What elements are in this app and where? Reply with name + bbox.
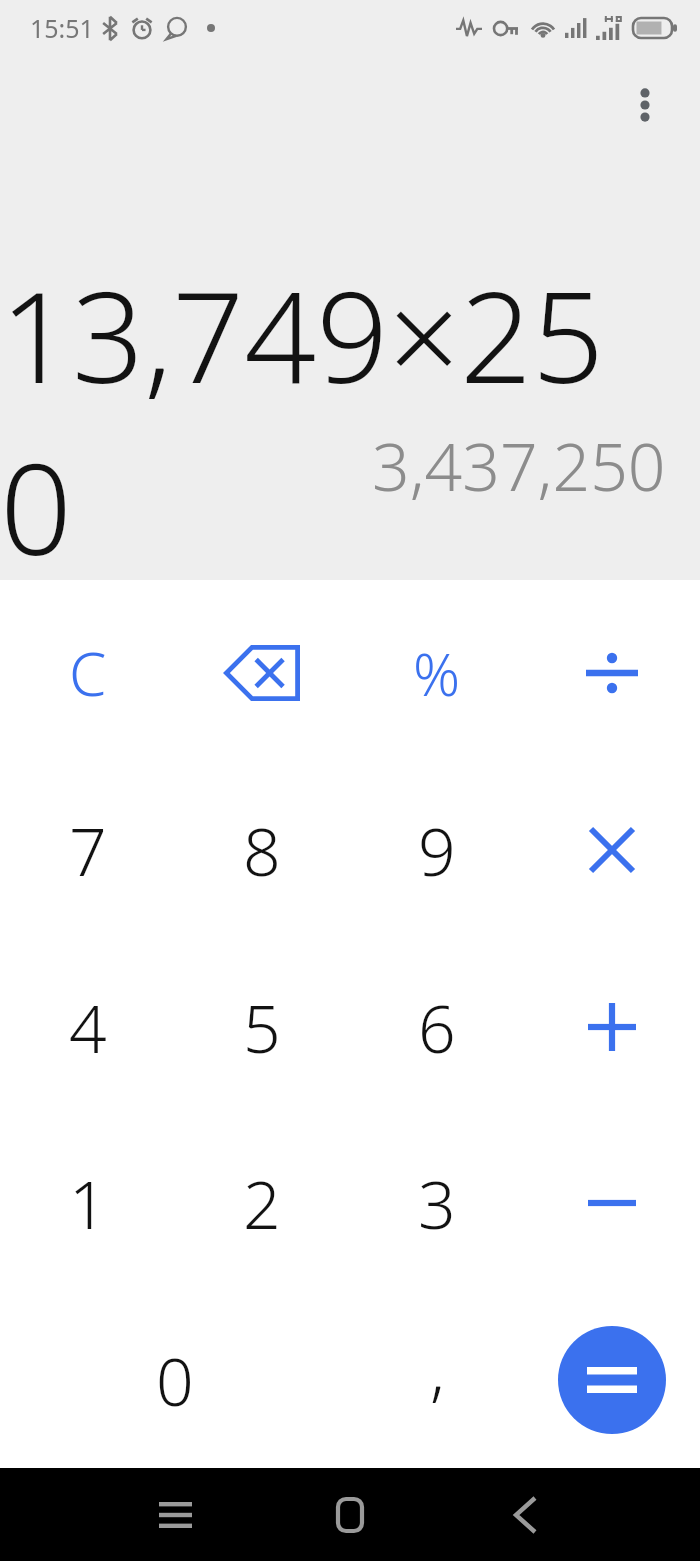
button[interactable]: Plus	[537, 952, 687, 1102]
staticText: %	[413, 634, 461, 713]
staticText: 15:51	[30, 11, 94, 45]
staticText: 8	[243, 805, 281, 895]
button[interactable]: Home	[293, 1468, 407, 1561]
button[interactable]: Recent apps	[118, 1468, 232, 1561]
button[interactable]: 8	[187, 775, 337, 925]
button[interactable]: More options	[602, 62, 688, 148]
staticText: 0	[156, 1335, 194, 1425]
staticText: ,	[430, 1323, 445, 1413]
staticText: 13,749×250	[0, 248, 666, 592]
staticText: 2	[243, 1158, 281, 1248]
button[interactable]: ,	[362, 1305, 512, 1455]
button[interactable]: 2	[187, 1128, 337, 1278]
button[interactable]: Equals	[558, 1326, 666, 1434]
button[interactable]: 3	[362, 1128, 512, 1278]
button[interactable]: 5	[187, 952, 337, 1102]
staticText: 7	[69, 805, 107, 895]
button[interactable]: Multiply	[537, 775, 687, 925]
button[interactable]: Divide	[537, 598, 687, 748]
button[interactable]: 4	[13, 952, 163, 1102]
staticText: 9	[418, 805, 456, 895]
button[interactable]: Back	[468, 1468, 582, 1561]
button[interactable]: Percent	[362, 598, 512, 748]
button[interactable]: 1	[13, 1128, 163, 1278]
button[interactable]: 7	[13, 775, 163, 925]
staticText: 6	[418, 982, 456, 1072]
button[interactable]: Backspace	[187, 598, 337, 748]
button[interactable]: Clear	[13, 598, 163, 748]
staticText: C	[69, 632, 107, 714]
button[interactable]: 6	[362, 952, 512, 1102]
staticText: 5	[243, 982, 281, 1072]
staticText: 3	[418, 1158, 456, 1248]
button[interactable]: 9	[362, 775, 512, 925]
staticText: 1	[69, 1158, 107, 1248]
button[interactable]: Minus	[537, 1128, 687, 1278]
staticText: 3,437,250	[372, 420, 666, 510]
button[interactable]: 0	[88, 1305, 262, 1455]
staticText: 4	[69, 982, 107, 1072]
